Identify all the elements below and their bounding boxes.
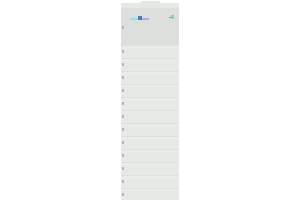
button[interactable] [121, 149, 179, 162]
button[interactable] [121, 58, 179, 71]
button[interactable] [121, 84, 179, 97]
button[interactable] [121, 175, 179, 188]
button[interactable]: Brand logo [130, 16, 149, 20]
button[interactable] [121, 188, 179, 200]
button[interactable] [121, 162, 179, 175]
button[interactable] [121, 45, 179, 58]
button[interactable] [121, 110, 179, 123]
button[interactable] [121, 136, 179, 149]
button[interactable]: Account status [169, 15, 174, 19]
button[interactable] [121, 123, 179, 136]
button[interactable] [121, 97, 179, 110]
button[interactable] [121, 71, 179, 84]
